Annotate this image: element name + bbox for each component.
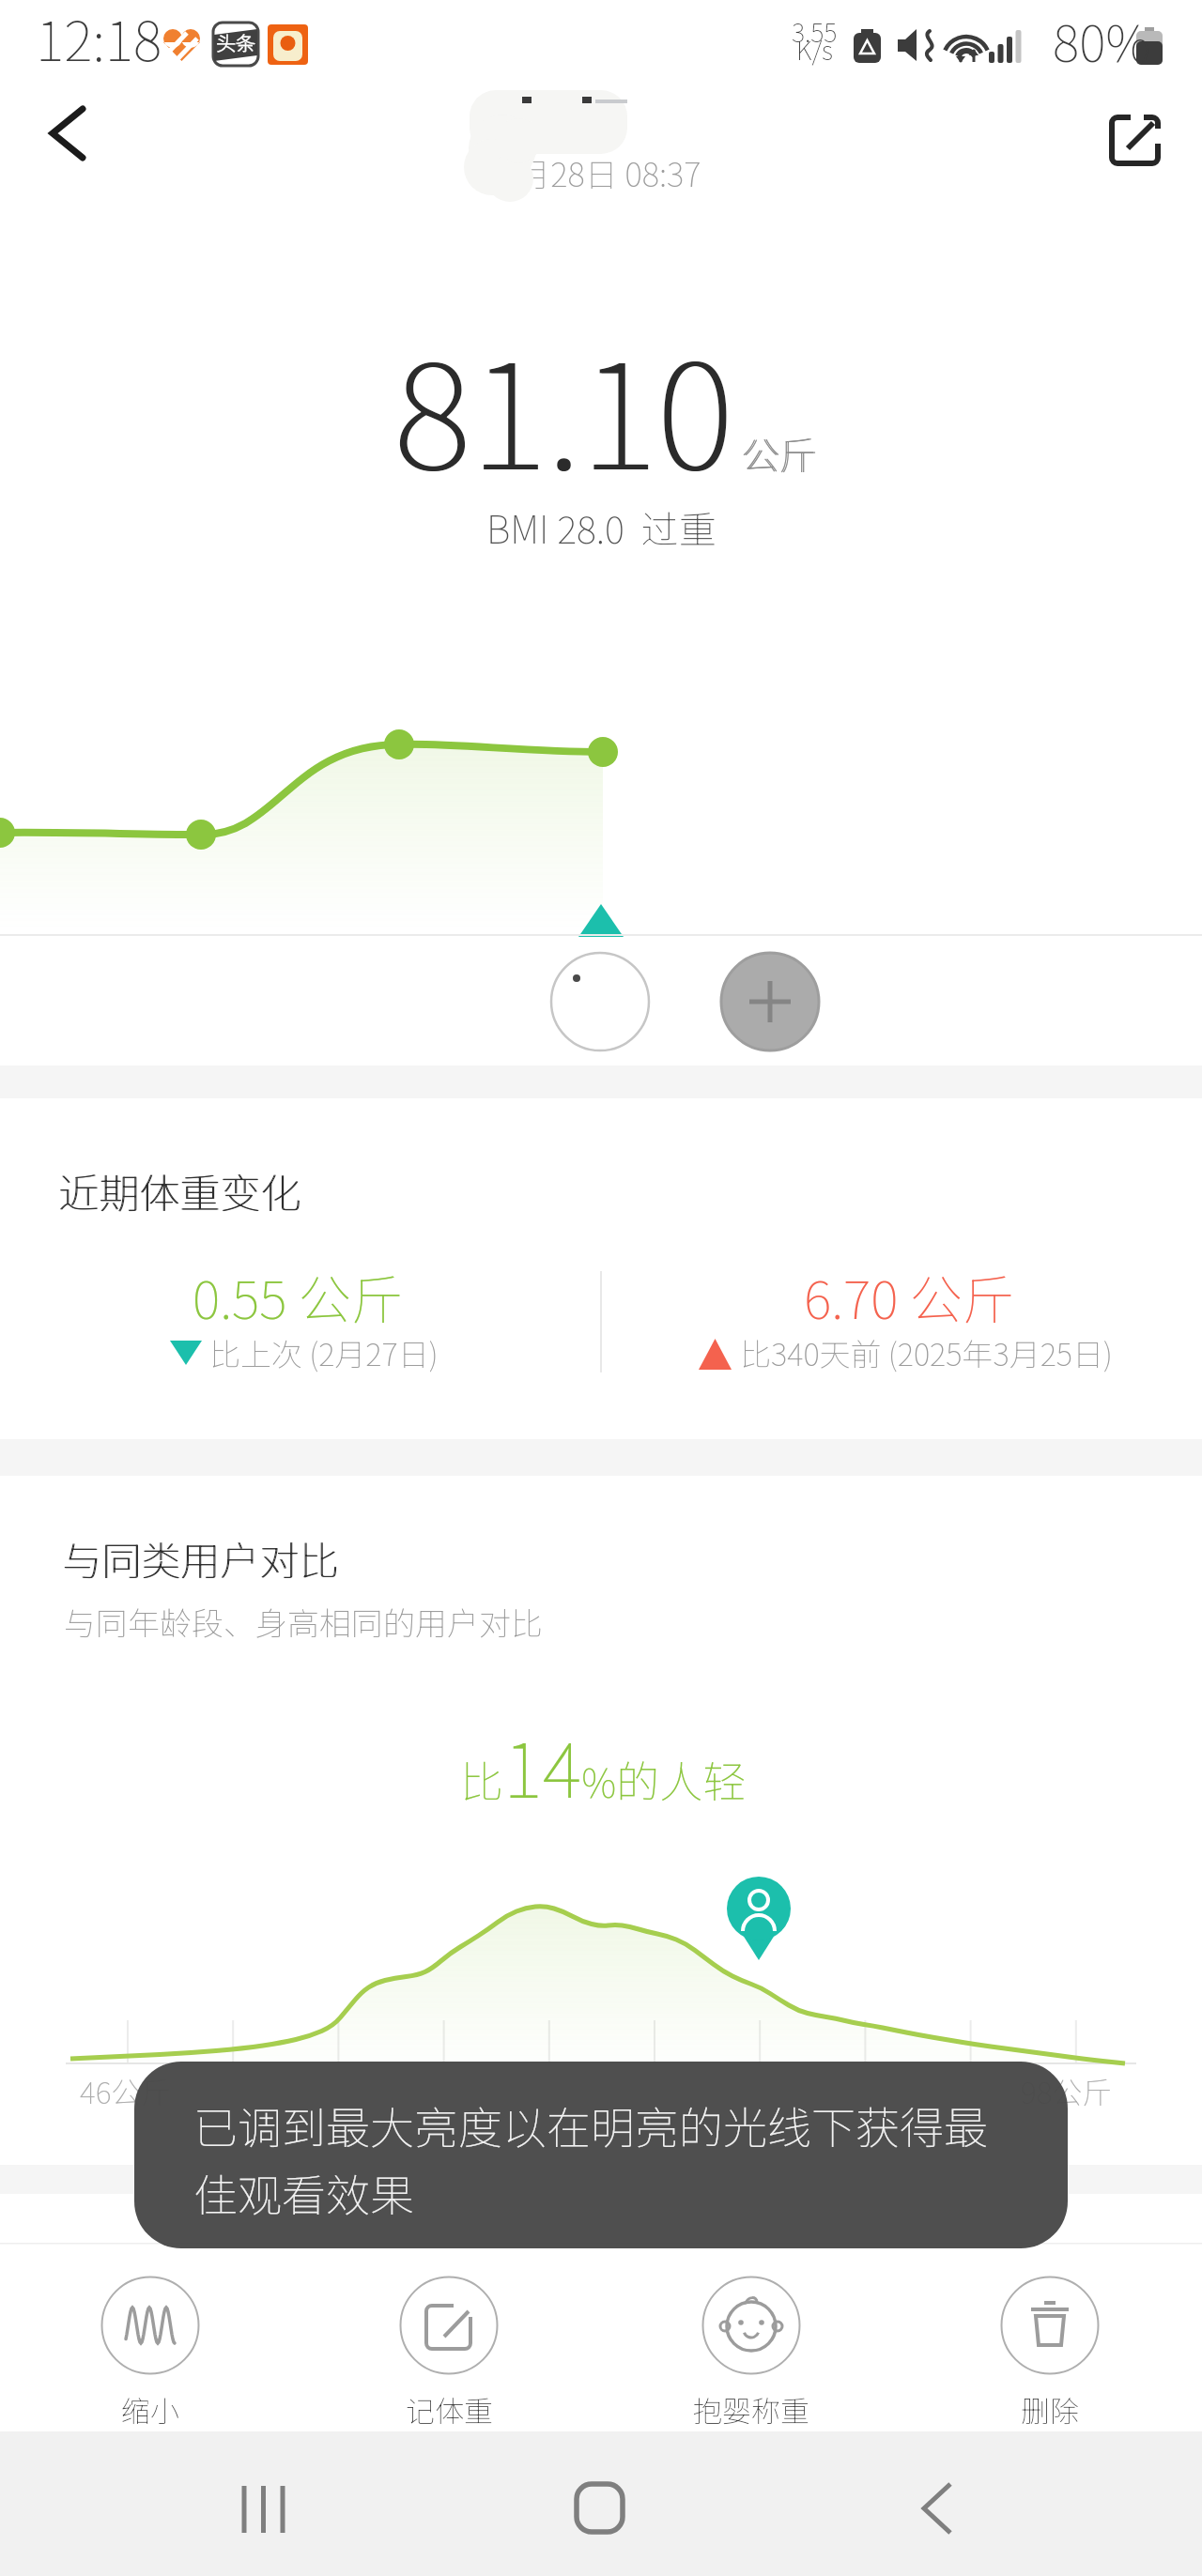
staticText: 与同类用户对比 [63,1529,340,1587]
button[interactable] [28,97,103,172]
staticText: 头条 [216,28,255,56]
staticText: 比340天前 (2025年3月25日) [740,1330,1113,1375]
staticText: 98公斤 [1021,2069,1113,2112]
staticText: 81.10 公斤 [395,299,818,512]
staticText: 已调到最大亮度以在明亮的光线下获得最 [193,2093,988,2156]
staticText: 比14%的人轻 [460,1710,747,1819]
staticText: 12:18 [36,0,162,77]
staticText: 80% [1053,3,1150,76]
staticText: 2月28日 08:37 [501,148,701,196]
staticText: 81.10 公斤 [393,299,816,512]
staticText: K/s [796,31,833,68]
button[interactable] [975,2270,1125,2430]
staticText: 记体重 [406,2388,493,2430]
button[interactable] [855,2450,1024,2563]
button[interactable] [1094,99,1179,183]
staticText: 佳观看效果 [193,2160,414,2224]
staticText: 近期体重变化 [58,1161,300,1219]
staticText: 6.70 公斤 [804,1258,1015,1334]
staticText: 与同类用户对比 [62,1529,339,1587]
staticText: 与同年龄段、身高相同的用户对比 [64,1599,543,1645]
button[interactable] [188,2450,357,2563]
staticText: 46公斤 [80,2069,172,2112]
button[interactable] [516,2450,686,2563]
staticText: 比上次 (2月27日) [209,1330,439,1375]
button[interactable] [551,953,649,1050]
button[interactable] [721,953,819,1050]
staticText: 缩小 [121,2388,179,2430]
staticText: BMI 28.0 过重 [486,500,717,555]
staticText: 3.55 [792,13,838,50]
staticText: 0.55 公斤 [193,1258,404,1334]
staticText: 删除 [1021,2388,1079,2430]
staticText: 抱婴称重 [693,2388,809,2430]
button[interactable] [75,2270,225,2430]
button[interactable] [676,2270,826,2430]
button[interactable] [374,2270,524,2430]
staticText: 近期体重变化 [59,1161,301,1219]
